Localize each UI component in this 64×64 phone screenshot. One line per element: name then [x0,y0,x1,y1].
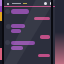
button[interactable]: Avatar [6,24,11,29]
button[interactable] [11,29,21,33]
button[interactable] [34,17,50,20]
button[interactable]: Avatar [5,40,10,45]
button[interactable]: Call [50,2,53,5]
button[interactable]: Video call [44,2,47,5]
button[interactable] [11,24,25,28]
button[interactable] [38,54,50,57]
button[interactable] [11,41,35,45]
button[interactable] [40,35,50,39]
button[interactable] [11,46,23,50]
button[interactable] [11,9,29,14]
button[interactable]: Back [6,2,10,6]
button[interactable]: Avatar [5,9,10,14]
